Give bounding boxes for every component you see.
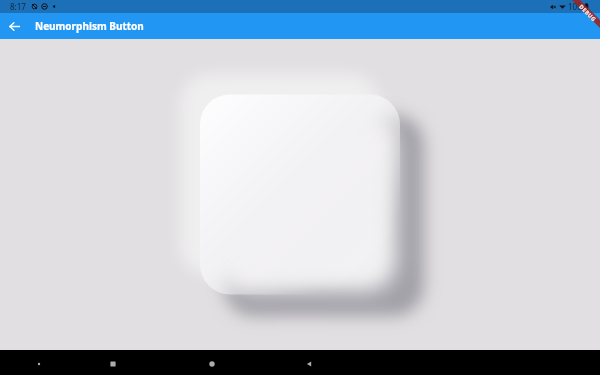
button[interactable]: Home bbox=[202, 354, 222, 374]
button[interactable]: Keyboard switcher bbox=[29, 354, 49, 374]
staticText: 8:17 bbox=[10, 1, 26, 12]
button[interactable]: Back bbox=[299, 354, 319, 374]
staticText: 100 bbox=[568, 1, 582, 12]
button[interactable]: Recent apps bbox=[103, 354, 123, 374]
staticText: DEBUG bbox=[578, 3, 598, 23]
button[interactable]: Neumorphic button bbox=[200, 95, 400, 295]
button[interactable]: Back bbox=[1, 13, 27, 39]
staticText: Neumorphism Button bbox=[35, 19, 144, 33]
